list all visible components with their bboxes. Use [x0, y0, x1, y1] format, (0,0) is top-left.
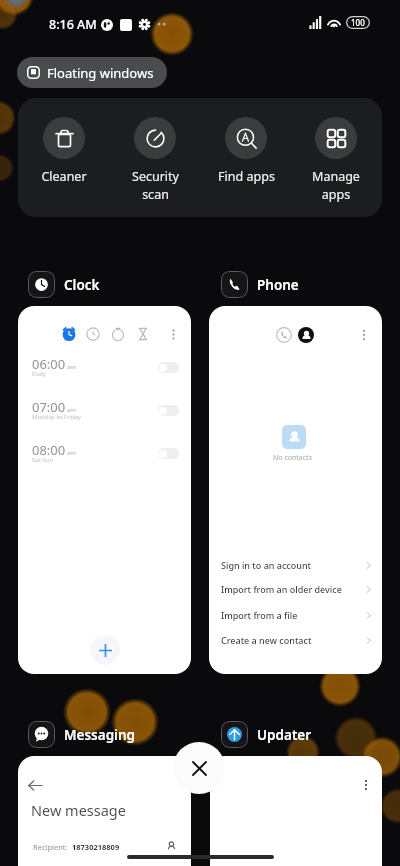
- button[interactable]: 06:00: [18, 356, 191, 386]
- button[interactable]: Back: [28, 778, 43, 793]
- staticText: Phone: [257, 276, 299, 294]
- staticText: Security scan: [132, 168, 179, 203]
- button[interactable]: Toggle alarm 07:00: [158, 405, 179, 416]
- staticText: Updater: [257, 726, 312, 744]
- button[interactable]: Clock: [28, 271, 100, 298]
- button[interactable]: More options: [209, 756, 382, 866]
- button[interactable]: Recents: [276, 327, 292, 343]
- staticText: am: [67, 449, 76, 457]
- staticText: 08:00: [32, 441, 66, 459]
- staticText: Daily: [32, 370, 46, 378]
- staticText: 07:00: [32, 398, 66, 416]
- staticText: Create a new contact: [221, 634, 312, 646]
- staticText: Import from an older device: [221, 583, 342, 595]
- button[interactable]: Cleaner: [19, 98, 109, 185]
- staticText: 8:16 AM: [49, 16, 97, 33]
- button[interactable]: Create a new contact: [209, 628, 382, 652]
- staticText: 06:00: [32, 355, 66, 373]
- staticText: Messaging: [64, 726, 135, 744]
- button[interactable]: Tab: [136, 327, 150, 341]
- button[interactable]: Contacts: [298, 327, 314, 343]
- button[interactable]: 07:00: [18, 399, 191, 429]
- button[interactable]: Import from an older device: [209, 577, 382, 601]
- button[interactable]: Floating windows: [27, 57, 154, 88]
- staticText: 100: [351, 17, 365, 28]
- staticText: Floating windows: [47, 64, 154, 82]
- button[interactable]: Import from a file: [209, 603, 382, 627]
- staticText: Import from a file: [221, 609, 298, 621]
- staticText: 18730218809: [72, 842, 120, 852]
- button[interactable]: Tab: [61, 326, 77, 342]
- button[interactable]: Tab: [167, 328, 180, 341]
- button[interactable]: Toggle alarm 06:00: [158, 362, 179, 373]
- staticText: Recipient:: [33, 842, 68, 852]
- button[interactable]: Back: [18, 756, 191, 866]
- button[interactable]: More options: [357, 328, 371, 342]
- button[interactable]: Updater: [221, 721, 312, 748]
- button[interactable]: Messaging: [28, 721, 135, 748]
- button[interactable]: Find apps: [201, 98, 291, 185]
- staticText: No contacts: [209, 453, 379, 463]
- button[interactable]: Sign in to an account: [209, 553, 382, 577]
- staticText: Find apps: [218, 168, 275, 185]
- button[interactable]: Toggle alarm 08:00: [158, 448, 179, 459]
- staticText: Cleaner: [41, 168, 87, 185]
- button[interactable]: 08:00: [18, 442, 191, 472]
- button[interactable]: Phone: [221, 271, 299, 298]
- staticText: Monday to Friday: [32, 413, 82, 421]
- staticText: New message: [31, 800, 126, 820]
- staticText: Manage apps: [312, 168, 360, 203]
- button[interactable]: Security scan: [110, 98, 200, 203]
- staticText: Clock: [64, 276, 100, 294]
- button[interactable]: More options: [359, 778, 373, 792]
- button[interactable]: Add alarm: [90, 635, 120, 665]
- button[interactable]: Tab: [18, 306, 191, 674]
- staticText: am: [67, 363, 76, 371]
- button[interactable]: Tab: [86, 327, 100, 341]
- staticText: am: [67, 406, 76, 414]
- button[interactable]: Tab: [111, 327, 125, 341]
- staticText: Sat Sun: [32, 456, 54, 464]
- staticText: Sign in to an account: [221, 559, 311, 571]
- button[interactable]: Close all: [173, 742, 225, 794]
- button[interactable]: Recents: [209, 306, 382, 674]
- button[interactable]: Manage apps: [291, 98, 381, 203]
